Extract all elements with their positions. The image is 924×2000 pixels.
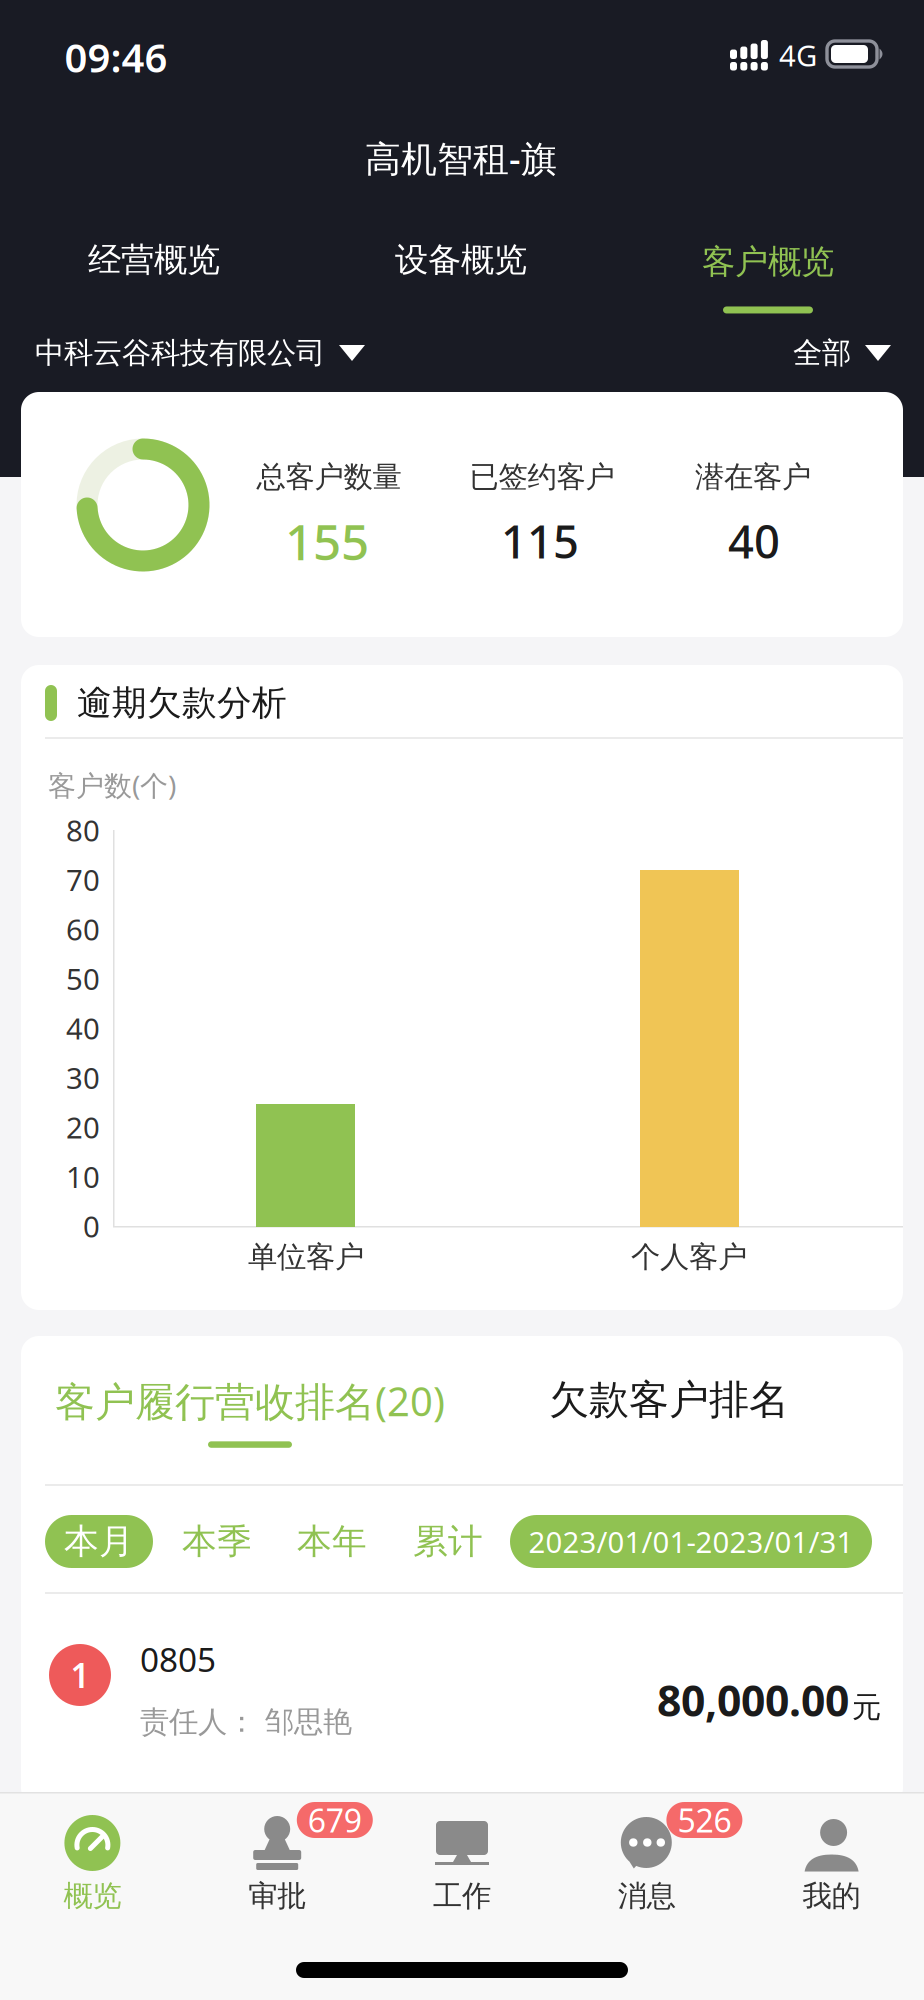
staticText: 客户概览 <box>702 241 834 282</box>
button[interactable]: 全部 <box>793 335 891 371</box>
staticText: 40 <box>66 1008 100 1047</box>
staticText: 个人客户 <box>631 1239 747 1275</box>
staticText: 高机智租-旗 <box>365 134 557 182</box>
staticText: 客户履行营收排名(20) <box>55 1374 445 1427</box>
staticText: 60 <box>66 909 100 948</box>
button[interactable]: 欠款客户排名 <box>549 1375 789 1424</box>
staticText: 审批 <box>248 1878 306 1914</box>
staticText: 本年 <box>297 1520 367 1563</box>
staticText: 全部 <box>793 335 851 371</box>
staticText: 155 <box>285 508 369 574</box>
button[interactable]: 1 <box>21 1625 903 1755</box>
staticText: 潜在客户 <box>695 459 811 495</box>
staticText: 0 <box>83 1206 100 1245</box>
staticText: 经营概览 <box>88 239 220 280</box>
staticText: 逾期欠款分析 <box>77 682 287 724</box>
staticText: 526 <box>677 1799 731 1841</box>
staticText: 1 <box>70 1653 89 1697</box>
staticText: 40 <box>728 511 780 571</box>
button[interactable]: 设备概览 <box>395 239 527 280</box>
staticText: 元 <box>852 1689 881 1725</box>
staticText: 本季 <box>182 1520 252 1563</box>
staticText: 本月 <box>64 1520 134 1563</box>
staticText: 0805 <box>140 1637 216 1681</box>
staticText: 4G <box>779 35 817 74</box>
button[interactable]: 我的 <box>739 1792 924 1920</box>
button[interactable]: 客户概览 <box>702 241 834 313</box>
button[interactable]: 累计 <box>413 1520 483 1563</box>
staticText: 概览 <box>63 1878 121 1914</box>
staticText: 工作 <box>433 1878 491 1914</box>
button[interactable]: 本季 <box>182 1520 252 1563</box>
staticText: 30 <box>66 1058 100 1097</box>
button[interactable]: 概览 <box>0 1792 185 1920</box>
staticText: 已签约客户 <box>469 459 614 495</box>
button[interactable]: 中科云谷科技有限公司 <box>35 335 365 371</box>
button[interactable]: 消息 <box>554 1792 739 1920</box>
button[interactable]: 2023/01/01-2023/01/31 <box>510 1515 872 1568</box>
staticText: 单位客户 <box>248 1239 364 1275</box>
button[interactable]: 经营概览 <box>88 239 220 280</box>
staticText: 679 <box>308 1799 362 1841</box>
staticText: 总客户数量 <box>256 459 401 495</box>
staticText: 设备概览 <box>395 239 527 280</box>
button[interactable]: 本月 <box>45 1515 153 1568</box>
staticText: 客户数(个) <box>48 766 176 804</box>
button[interactable]: 审批 <box>185 1792 370 1920</box>
staticText: 2023/01/01-2023/01/31 <box>528 1522 853 1561</box>
staticText: 20 <box>66 1107 100 1146</box>
staticText: 70 <box>66 860 100 899</box>
staticText: 欠款客户排名 <box>549 1375 789 1424</box>
staticText: 我的 <box>803 1878 861 1914</box>
staticText: 累计 <box>413 1520 483 1563</box>
staticText: 10 <box>66 1157 100 1196</box>
staticText: 80,000.00 <box>657 1672 849 1728</box>
staticText: 09:46 <box>64 30 167 83</box>
staticText: 责任人： 邹思艳 <box>140 1704 352 1740</box>
button[interactable]: 客户履行营收排名(20) <box>55 1374 445 1448</box>
staticText: 中科云谷科技有限公司 <box>35 335 325 371</box>
staticText: 消息 <box>618 1878 676 1914</box>
button[interactable]: 本年 <box>297 1520 367 1563</box>
button[interactable]: 工作 <box>370 1792 554 1920</box>
staticText: 50 <box>66 959 100 998</box>
staticText: 115 <box>501 511 579 571</box>
staticText: 80 <box>66 810 100 849</box>
